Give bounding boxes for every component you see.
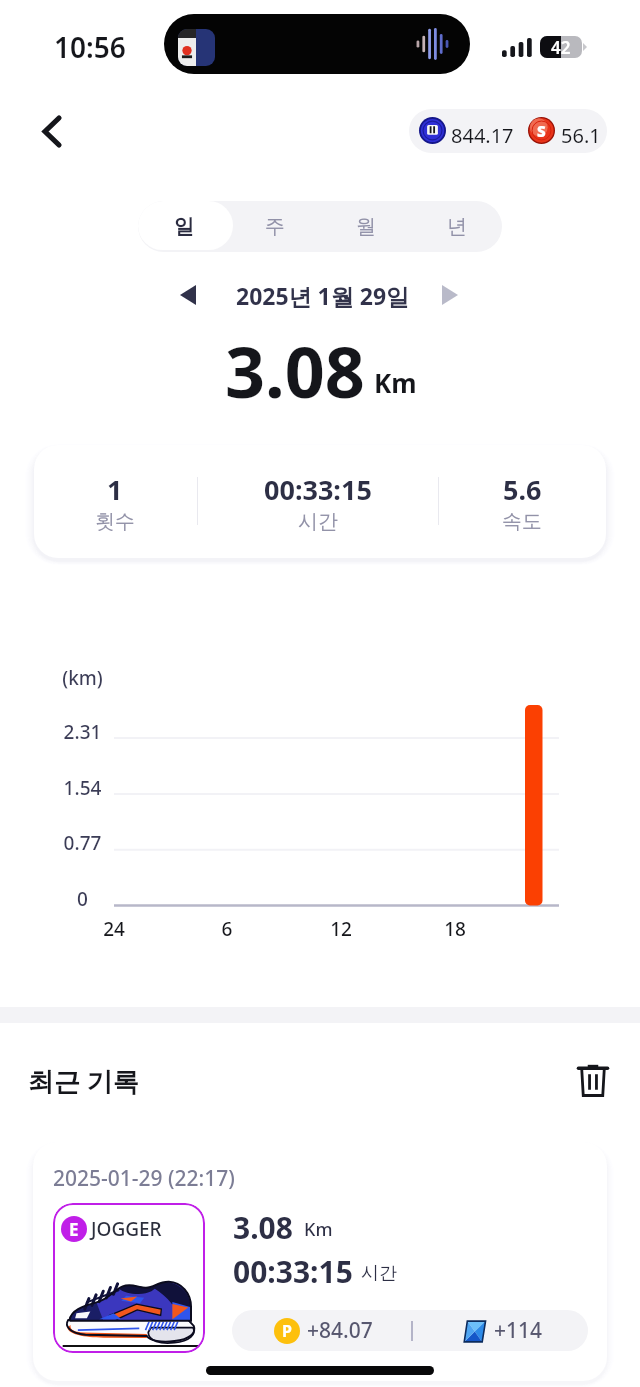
button[interactable]: 월 (320, 201, 411, 252)
staticText: 6 (197, 916, 257, 942)
button[interactable]: 년 (411, 201, 502, 252)
staticText: 1 (107, 471, 123, 508)
button[interactable]: Back (25, 104, 79, 158)
staticText: +114 (494, 1316, 543, 1345)
staticText: 18 (425, 916, 485, 942)
staticText: S (537, 121, 546, 141)
staticText: 횟수 (95, 509, 135, 534)
staticText: P (282, 1320, 292, 1342)
staticText: 시간 (298, 509, 338, 534)
staticText: 0 (22, 886, 143, 912)
staticText: 2.31 (22, 719, 143, 745)
button[interactable]: Delete (564, 1051, 622, 1109)
button[interactable]: 일 (138, 201, 229, 252)
staticText: 시간 (361, 1262, 397, 1285)
button[interactable]: 844.17 (409, 109, 607, 153)
staticText: 1.54 (22, 775, 143, 801)
staticText: 42 (551, 36, 571, 58)
button[interactable]: 2025-01-29 (22:17) (33, 1142, 607, 1381)
staticText: 최근 기록 (28, 1063, 139, 1099)
staticText: 월 (356, 214, 376, 239)
button[interactable]: Previous day (168, 275, 208, 315)
staticText: 3.08 (225, 323, 365, 418)
staticText: 주 (265, 214, 285, 239)
staticText: 2025년 1월 29일 (236, 280, 410, 311)
button[interactable]: Next day (430, 275, 470, 315)
staticText: Km (304, 1217, 333, 1242)
staticText: 년 (447, 214, 467, 239)
staticText: 844.17 (451, 122, 514, 149)
staticText: Km (374, 365, 417, 400)
staticText: JOGGER (91, 1216, 162, 1242)
staticText: E (69, 1218, 79, 1241)
staticText: 00:33:15 (233, 1251, 353, 1292)
staticText: 00:33:15 (264, 471, 372, 508)
staticText: +84.07 (307, 1316, 373, 1345)
staticText: 0.77 (22, 830, 143, 856)
staticText: 12 (311, 916, 371, 942)
staticText: 56.1 (561, 122, 601, 149)
staticText: 3.08 (233, 1207, 293, 1248)
button[interactable]: 주 (229, 201, 320, 252)
staticText: (km) (22, 665, 143, 691)
staticText: 24 (84, 916, 144, 942)
staticText: 속도 (502, 509, 542, 534)
staticText: 일 (174, 214, 194, 239)
staticText: 10:56 (54, 28, 126, 66)
staticText: 5.6 (503, 471, 542, 508)
staticText: 2025-01-29 (22:17) (53, 1164, 235, 1193)
